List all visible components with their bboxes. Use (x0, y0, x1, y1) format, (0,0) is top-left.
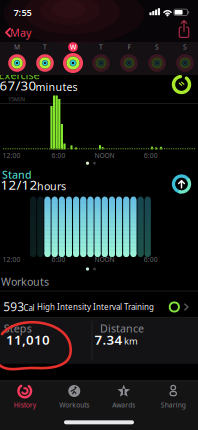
staticText: 12:00 (2, 255, 20, 264)
button[interactable]: Day M (3, 41, 31, 75)
staticText: 593 (3, 298, 24, 314)
staticText: hours (37, 179, 66, 193)
staticText: Cal (23, 303, 34, 313)
staticText: Distance (100, 321, 144, 335)
staticText: Workouts (59, 401, 89, 409)
button[interactable]: Day T (31, 41, 59, 75)
staticText: Workouts (1, 274, 49, 289)
button[interactable]: History (0, 381, 49, 427)
staticText: NOON (94, 151, 114, 160)
staticText: History (14, 401, 36, 409)
staticText: T (43, 43, 47, 51)
button[interactable]: Share (174, 17, 194, 41)
button[interactable]: Day S (143, 41, 171, 75)
staticText: 6:00 (144, 151, 158, 160)
staticText: 67/30 (0, 76, 36, 94)
button[interactable]: Workouts (49, 381, 99, 427)
button[interactable]: Awards (99, 381, 148, 427)
button[interactable]: Back (0, 24, 36, 40)
staticText: 12:00 (2, 151, 20, 160)
button[interactable]: Day S (171, 41, 198, 75)
button[interactable]: Sharing (148, 381, 198, 427)
staticText: 11,010 (6, 331, 50, 348)
staticText: S (183, 43, 187, 51)
staticText: May (10, 25, 31, 40)
staticText: 7:55 (13, 6, 31, 19)
staticText: T (99, 43, 103, 51)
staticText: km (124, 335, 138, 347)
staticText: 12/12 (0, 176, 37, 193)
staticText: Exercise (0, 68, 39, 82)
button[interactable]: Day T (87, 41, 115, 75)
staticText: F (127, 43, 130, 51)
staticText: Sharing (161, 401, 186, 409)
button[interactable]: Day W (59, 41, 87, 75)
staticText: NOON (94, 255, 114, 264)
staticText: Steps (4, 321, 32, 335)
staticText: Stand (2, 167, 32, 182)
staticText: Awards (112, 401, 135, 409)
staticText: 6:00 (51, 255, 65, 264)
staticText: minutes (35, 80, 77, 94)
staticText: 6:00 (51, 151, 65, 160)
staticText: 7.34 (94, 331, 122, 348)
button[interactable]: 593 (0, 291, 198, 317)
staticText: 6:00 (144, 255, 158, 264)
staticText: High Intensity Interval Training (37, 302, 154, 312)
staticText: S (155, 43, 159, 51)
staticText: W (70, 43, 76, 51)
staticText: M (14, 43, 20, 51)
button[interactable]: Day F (115, 41, 143, 75)
staticText: 15MIN (8, 96, 25, 103)
